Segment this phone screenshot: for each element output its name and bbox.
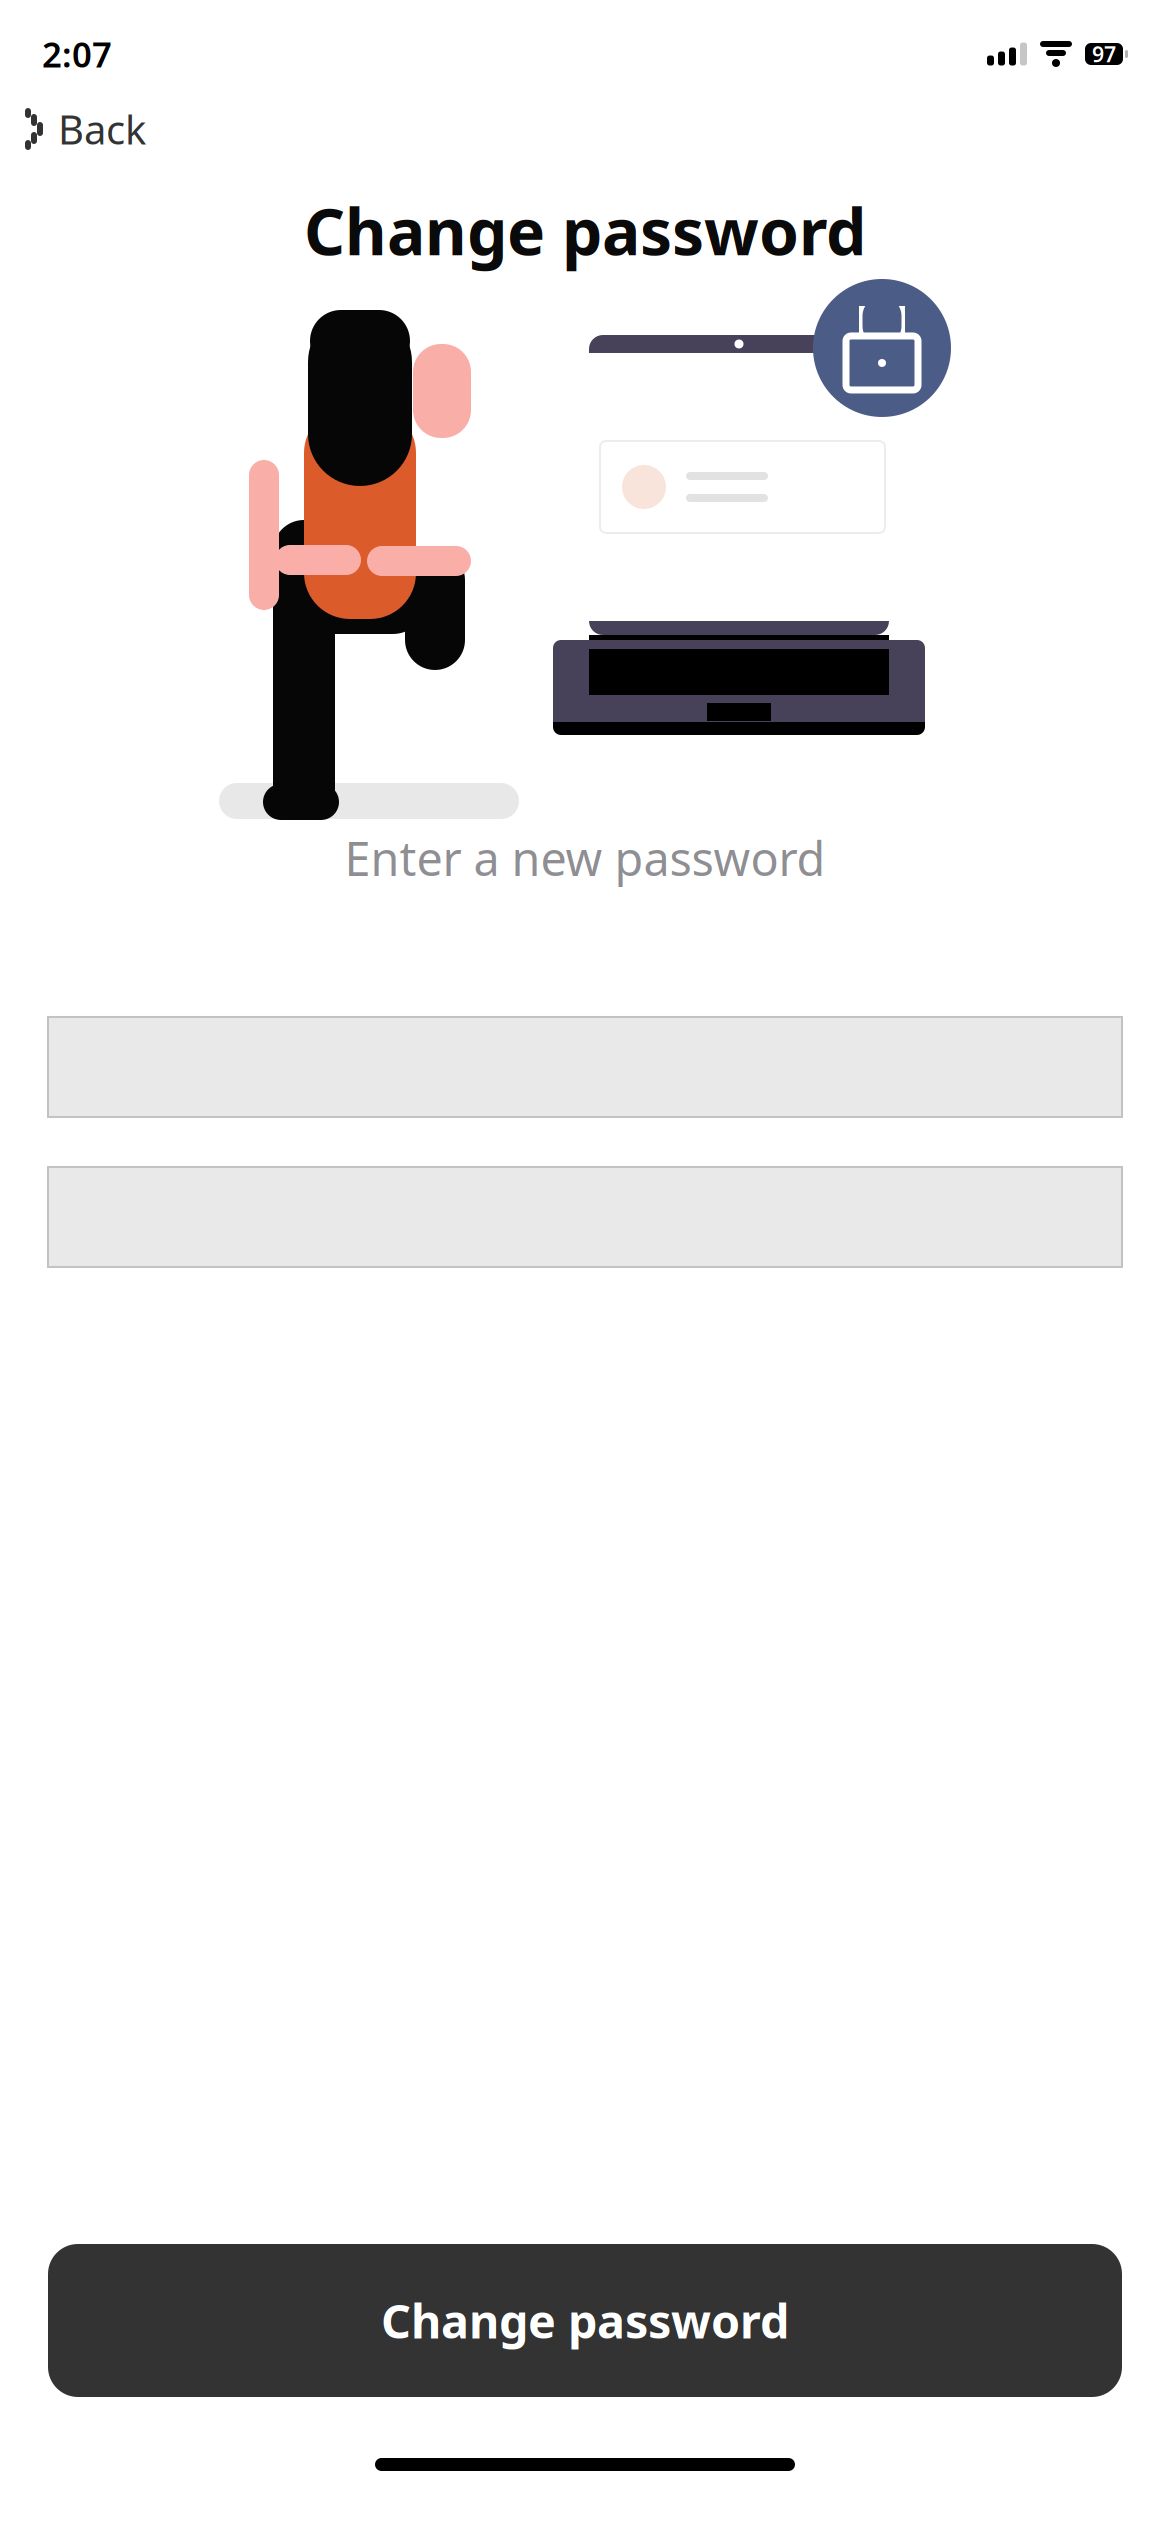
staticText: 2:07 xyxy=(42,31,112,77)
staticText: Change password xyxy=(304,188,866,273)
staticText: Change password xyxy=(381,2289,789,2351)
button[interactable]: New password xyxy=(48,1017,1122,1117)
button[interactable]: Back xyxy=(0,96,170,162)
staticText: Enter a new password xyxy=(344,827,825,889)
button[interactable]: Confirm password xyxy=(48,1167,1122,1267)
staticText: 97 xyxy=(1092,40,1116,68)
button[interactable]: Change password xyxy=(48,2244,1122,2397)
staticText: Back xyxy=(58,102,146,155)
